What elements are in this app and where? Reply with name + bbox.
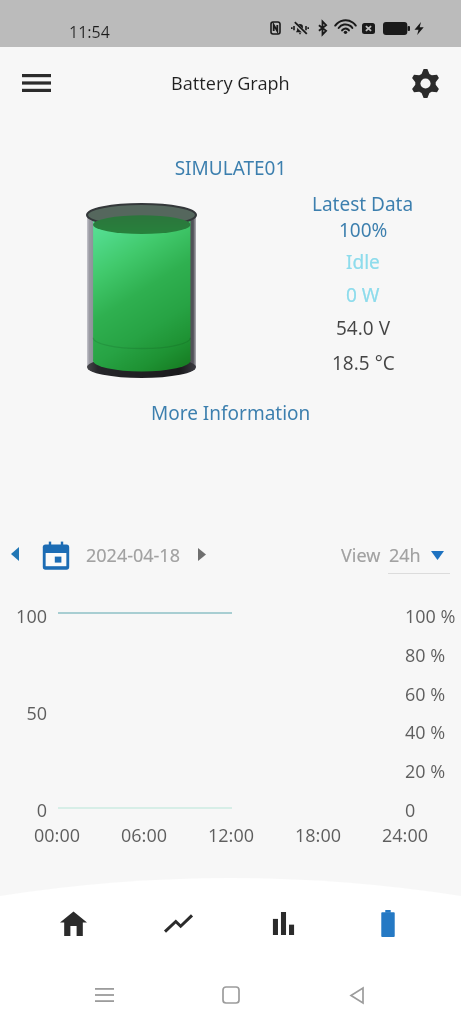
staticText: 11:54 xyxy=(69,21,110,43)
staticText: 100 xyxy=(0,604,47,629)
button[interactable]: Menu xyxy=(12,59,60,107)
staticText: 12:00 xyxy=(208,823,255,848)
staticText: 54.0 V xyxy=(336,315,391,341)
button[interactable]: Back xyxy=(335,973,379,1017)
staticText: 40 % xyxy=(405,720,446,745)
staticText: View xyxy=(341,543,381,568)
button[interactable]: Recent apps xyxy=(82,973,126,1017)
staticText: 2024-04-18 xyxy=(86,543,180,568)
staticText: 50 xyxy=(0,701,47,726)
staticText: 00:00 xyxy=(34,823,81,848)
staticText: 0 xyxy=(0,798,47,823)
staticText: 100 % xyxy=(405,604,456,629)
staticText: Battery Graph xyxy=(171,71,290,96)
button[interactable]: Trend xyxy=(126,894,231,952)
staticText: 24:00 xyxy=(382,823,429,848)
staticText: 06:00 xyxy=(121,823,168,848)
staticText: 80 % xyxy=(405,643,446,668)
staticText: Latest Data xyxy=(312,191,414,217)
staticText: 0 xyxy=(405,798,416,823)
staticText: SIMULATE01 xyxy=(0,155,461,181)
button[interactable]: Pick date xyxy=(34,534,77,577)
button[interactable]: Next day xyxy=(180,532,224,576)
button[interactable]: Battery xyxy=(335,894,440,952)
button[interactable]: Settings xyxy=(401,59,449,107)
button[interactable]: More Information xyxy=(141,396,321,430)
staticText: 20 % xyxy=(405,759,446,784)
staticText: 100% xyxy=(339,217,388,243)
staticText: 24h xyxy=(389,543,421,568)
staticText: 0 W xyxy=(346,282,380,308)
staticText: 60 % xyxy=(405,682,446,707)
button[interactable]: Home xyxy=(21,894,126,952)
staticText: Idle xyxy=(346,249,380,275)
button[interactable]: Previous day xyxy=(0,532,37,576)
staticText: 18:00 xyxy=(295,823,342,848)
button[interactable]: 24h xyxy=(386,538,450,578)
button[interactable]: Home button xyxy=(209,973,253,1017)
staticText: 18.5 °C xyxy=(332,350,395,376)
button[interactable]: Statistics xyxy=(231,894,336,952)
